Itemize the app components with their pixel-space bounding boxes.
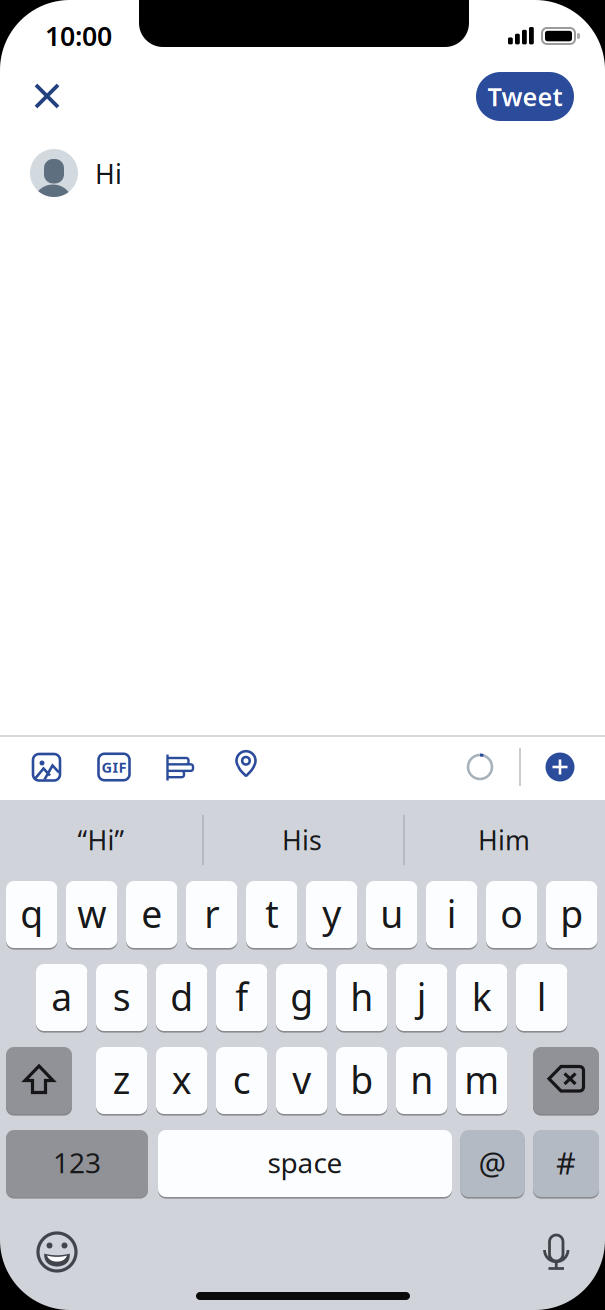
staticText: @ <box>478 1142 506 1183</box>
button[interactable] <box>545 752 575 782</box>
button[interactable]: His <box>202 801 402 879</box>
staticText: y <box>322 889 341 938</box>
button[interactable]: u <box>366 880 417 949</box>
button[interactable] <box>224 745 268 789</box>
button[interactable]: s <box>96 963 147 1032</box>
button[interactable] <box>25 745 69 789</box>
button[interactable]: Him <box>404 801 604 879</box>
button[interactable]: l <box>516 963 567 1032</box>
button[interactable]: space <box>158 1129 452 1198</box>
staticText: c <box>233 1055 251 1104</box>
staticText: Tweet <box>487 80 562 113</box>
button[interactable]: “Hi” <box>1 801 201 879</box>
button[interactable]: j <box>396 963 447 1032</box>
button[interactable] <box>533 1046 599 1115</box>
button[interactable]: f <box>216 963 267 1032</box>
staticText: 10:00 <box>45 18 112 53</box>
button[interactable]: n <box>396 1046 447 1115</box>
button[interactable]: p <box>546 880 597 949</box>
staticText: h <box>350 972 373 1021</box>
button[interactable]: z <box>96 1046 147 1115</box>
button[interactable]: i <box>426 880 477 949</box>
button[interactable]: g <box>276 963 327 1032</box>
staticText: b <box>350 1055 373 1104</box>
staticText: q <box>20 889 43 938</box>
staticText: v <box>292 1055 311 1104</box>
button[interactable]: t <box>246 880 297 949</box>
button[interactable]: Tweet <box>476 72 574 121</box>
staticText: 123 <box>53 1144 101 1181</box>
button[interactable] <box>6 1046 72 1115</box>
staticText: l <box>537 972 547 1021</box>
staticText: x <box>172 1055 192 1104</box>
button[interactable]: e <box>126 880 177 949</box>
button[interactable]: h <box>336 963 387 1032</box>
button[interactable]: @ <box>460 1129 524 1198</box>
staticText: # <box>556 1142 576 1183</box>
staticText: o <box>500 889 523 938</box>
staticText: w <box>77 889 106 938</box>
staticText: g <box>290 972 313 1021</box>
staticText: n <box>410 1055 433 1104</box>
staticText: f <box>235 972 248 1021</box>
button[interactable] <box>158 745 202 789</box>
button[interactable]: b <box>336 1046 387 1115</box>
staticText: p <box>560 889 583 938</box>
staticText: space <box>267 1144 342 1181</box>
button[interactable]: # <box>533 1129 599 1198</box>
button[interactable]: a <box>36 963 87 1032</box>
staticText: m <box>464 1055 499 1104</box>
staticText: a <box>51 972 72 1021</box>
staticText: Him <box>478 822 530 858</box>
button[interactable]: m <box>456 1046 507 1115</box>
staticText: k <box>472 972 492 1021</box>
staticText: t <box>265 889 278 938</box>
staticText: j <box>417 972 427 1021</box>
staticText: “Hi” <box>77 822 124 858</box>
button[interactable]: w <box>66 880 117 949</box>
button[interactable]: c <box>216 1046 267 1115</box>
button[interactable]: d <box>156 963 207 1032</box>
staticText: z <box>113 1055 131 1104</box>
staticText: e <box>141 889 162 938</box>
button[interactable]: v <box>276 1046 327 1115</box>
button[interactable]: r <box>186 880 237 949</box>
staticText: u <box>380 889 403 938</box>
button[interactable]: k <box>456 963 507 1032</box>
button[interactable]: GIF <box>91 745 137 789</box>
staticText: d <box>170 972 193 1021</box>
button[interactable]: x <box>156 1046 207 1115</box>
staticText: i <box>447 889 457 938</box>
button[interactable]: y <box>306 880 357 949</box>
button[interactable] <box>528 1224 584 1280</box>
button[interactable] <box>17 66 77 126</box>
staticText: His <box>282 822 322 858</box>
button[interactable] <box>29 1224 85 1280</box>
button[interactable]: o <box>486 880 537 949</box>
staticText: r <box>204 889 219 938</box>
button[interactable]: q <box>6 880 57 949</box>
staticText: Hi <box>95 156 122 191</box>
staticText: GIF <box>101 757 126 777</box>
button[interactable]: 123 <box>6 1129 148 1198</box>
staticText: s <box>113 972 131 1021</box>
